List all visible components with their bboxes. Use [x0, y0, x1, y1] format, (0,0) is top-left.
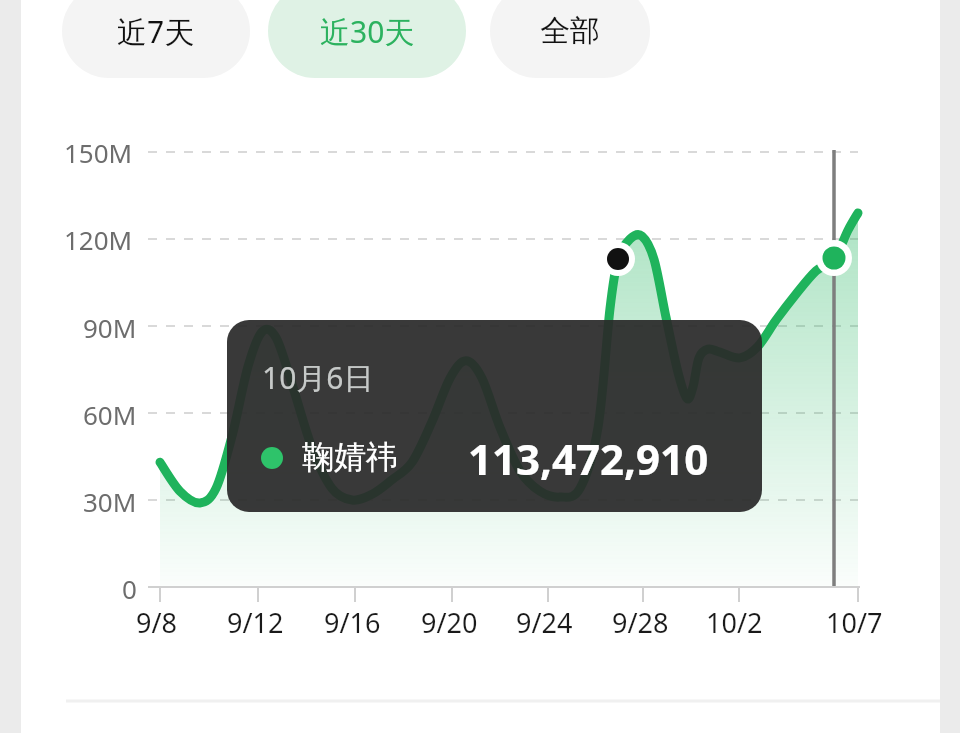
button[interactable]: 全部 [490, 0, 650, 78]
staticText: 60M [83, 397, 137, 432]
staticText: 9/12 [227, 604, 284, 641]
staticText: 10/2 [706, 604, 763, 641]
staticText: 近7天 [117, 11, 195, 52]
staticText: 9/8 [136, 604, 177, 641]
staticText: 9/24 [516, 604, 573, 641]
staticText: 30M [83, 484, 137, 519]
staticText: 10月6日 [262, 357, 374, 398]
button[interactable]: Data point details for October 6 [227, 320, 762, 512]
staticText: 全部 [540, 12, 600, 50]
staticText: 90M [83, 310, 137, 345]
staticText: 120M [64, 222, 133, 257]
staticText: 9/28 [612, 604, 669, 641]
staticText: 113,472,910 [468, 430, 709, 487]
button[interactable]: 近30天 [268, 0, 466, 78]
staticText: 9/20 [421, 604, 478, 641]
staticText: 近30天 [320, 11, 415, 52]
staticText: 0 [122, 571, 137, 606]
staticText: 10/7 [826, 604, 883, 641]
staticText: 9/16 [324, 604, 381, 641]
button[interactable]: 近7天 [62, 0, 250, 78]
staticText: 150M [64, 135, 133, 170]
staticText: 鞠婧祎 [302, 437, 398, 477]
